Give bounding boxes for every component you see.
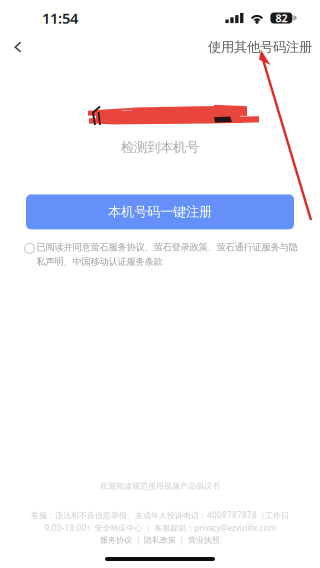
staticText: 本机号码一键注册 (108, 204, 212, 220)
staticText: 客服：违法和不良信息举报、未成年人投诉电话：4008787878（工作日 (31, 510, 289, 520)
staticText: 82 (275, 11, 287, 25)
staticText: 9:00-18:00）安全响应中心 ｜ 客服邮箱：privacy@ezvizli… (44, 522, 275, 533)
button[interactable]: 已阅读并同意萤石服务协议、萤石登录政策、萤石通行证服务与隐私声明、中国移动认证服… (16, 241, 303, 267)
button[interactable]: 本机号码一键注册 (26, 194, 294, 229)
button[interactable]: 使用其他号码注册 (208, 32, 320, 62)
staticText: 使用其他号码注册 (208, 39, 312, 55)
staticText: 服务协议 ｜ 隐私政策 ｜ 营业执照 (100, 535, 220, 545)
staticText: 检测到本机号 (121, 139, 199, 155)
button[interactable]: 返回 (0, 32, 36, 62)
button[interactable]: 欢迎阅读规范使用视频产品倡议书 (100, 481, 220, 491)
staticText: 已阅读并同意萤石服务协议、萤石登录政策、萤石通行证服务与隐私声明、中国移动认证服… (36, 241, 297, 267)
staticText: 欢迎阅读规范使用视频产品倡议书 (100, 481, 220, 491)
staticText: 11:54 (42, 8, 78, 28)
